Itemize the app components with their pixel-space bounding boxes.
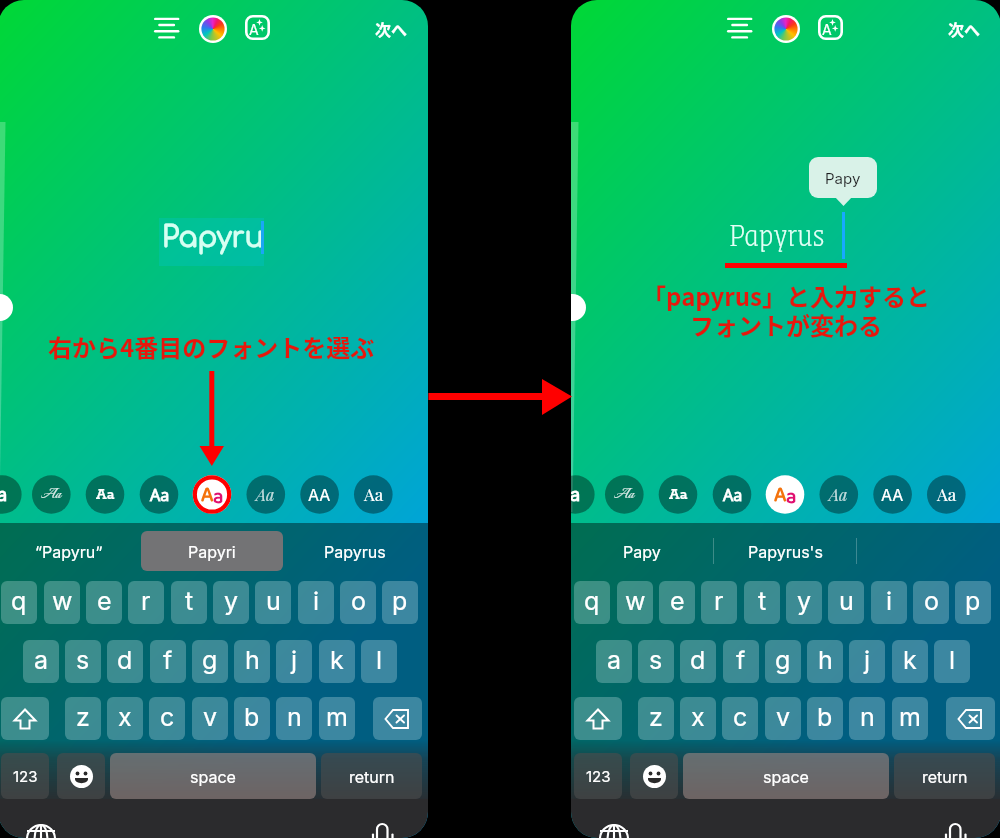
button[interactable]: m: [319, 697, 355, 740]
button[interactable]: return: [321, 753, 422, 799]
button[interactable]: k: [319, 640, 355, 683]
button[interactable]: s: [65, 640, 101, 683]
button[interactable]: m: [892, 697, 928, 740]
button[interactable]: x: [107, 697, 143, 740]
button[interactable]: z: [638, 697, 674, 740]
button[interactable]: 123: [574, 753, 622, 799]
button[interactable]: h: [807, 640, 843, 683]
button[interactable]: 123: [1, 753, 49, 799]
button[interactable]: q: [1, 581, 37, 624]
button[interactable]: g: [765, 640, 801, 683]
staticText: o: [351, 586, 366, 616]
button[interactable]: Papyrus: [284, 531, 426, 571]
button[interactable]: Text effects: [818, 15, 843, 40]
button[interactable]: k: [892, 640, 928, 683]
button[interactable]: y: [786, 581, 822, 624]
button[interactable]: a: [596, 640, 632, 683]
button[interactable]: Font style 4: [713, 475, 752, 514]
button[interactable]: a: [23, 640, 59, 683]
button[interactable]: Font style 3: [86, 475, 125, 514]
button[interactable]: u: [828, 581, 864, 624]
button[interactable]: Emoji: [630, 753, 678, 799]
button[interactable]: Shift: [1, 697, 49, 740]
button[interactable]: n: [849, 697, 885, 740]
button[interactable]: f: [723, 640, 759, 683]
button[interactable]: d: [107, 640, 143, 683]
button[interactable]: r: [701, 581, 737, 624]
button[interactable]: i: [871, 581, 907, 624]
button[interactable]: e: [659, 581, 695, 624]
button[interactable]: v: [192, 697, 228, 740]
button[interactable]: return: [894, 753, 995, 799]
button[interactable]: s: [638, 640, 674, 683]
button[interactable]: Papy: [571, 531, 713, 571]
button[interactable]: u: [255, 581, 291, 624]
button[interactable]: Font style 1: [571, 475, 595, 514]
button[interactable]: t: [744, 581, 780, 624]
button[interactable]: space: [683, 753, 889, 799]
button[interactable]: o: [913, 581, 949, 624]
button[interactable]: j: [849, 640, 885, 683]
button[interactable]: p: [382, 581, 418, 624]
button[interactable]: l: [934, 640, 970, 683]
button[interactable]: b: [234, 697, 270, 740]
button[interactable]: Font style 8: [354, 475, 393, 514]
button[interactable]: y: [213, 581, 249, 624]
button[interactable]: Font style 1: [0, 475, 22, 514]
button[interactable]: r: [128, 581, 164, 624]
button[interactable]: t: [171, 581, 207, 624]
button[interactable]: Papy: [809, 157, 877, 198]
button[interactable]: 次へ: [375, 17, 408, 40]
button[interactable]: g: [192, 640, 228, 683]
button[interactable]: w: [617, 581, 653, 624]
button[interactable]: 次へ: [948, 17, 981, 40]
button[interactable]: Backspace: [946, 697, 995, 740]
button[interactable]: Font style 7: [873, 475, 912, 514]
button[interactable]: Text alignment: [726, 16, 753, 40]
button[interactable]: w: [44, 581, 80, 624]
button[interactable]: Font style 2: [605, 475, 644, 514]
staticText: a: [0, 484, 8, 506]
button[interactable]: i: [298, 581, 334, 624]
button[interactable]: Font style 6: [246, 475, 285, 514]
button[interactable]: Emoji: [57, 753, 105, 799]
button[interactable]: l: [361, 640, 397, 683]
button[interactable]: b: [807, 697, 843, 740]
button[interactable]: e: [86, 581, 122, 624]
button[interactable]: Papyrus's: [714, 531, 856, 571]
button[interactable]: d: [680, 640, 716, 683]
button[interactable]: Font style 4: [140, 475, 179, 514]
button[interactable]: z: [65, 697, 101, 740]
button[interactable]: f: [150, 640, 186, 683]
button[interactable]: Shift: [574, 697, 622, 740]
button[interactable]: x: [680, 697, 716, 740]
button[interactable]: c: [722, 697, 758, 740]
button[interactable]: Dictation: [369, 820, 395, 838]
button[interactable]: Colour picker: [772, 15, 800, 43]
button[interactable]: n: [276, 697, 312, 740]
button[interactable]: Font style 5: [766, 475, 805, 514]
button[interactable]: Font style 6: [819, 475, 858, 514]
button[interactable]: Text effects: [245, 15, 270, 40]
button[interactable]: Dictation: [942, 820, 968, 838]
button[interactable]: h: [234, 640, 270, 683]
button[interactable]: o: [340, 581, 376, 624]
button[interactable]: Papyri: [141, 531, 283, 571]
button[interactable]: Font style 3: [659, 475, 698, 514]
button[interactable]: Colour picker: [199, 15, 227, 43]
button[interactable]: Switch keyboard: [598, 820, 630, 838]
button[interactable]: Font style 8: [927, 475, 966, 514]
button[interactable]: Switch keyboard: [25, 820, 57, 838]
button[interactable]: q: [574, 581, 610, 624]
button[interactable]: Font style 2: [32, 475, 71, 514]
button[interactable]: Font style 7: [300, 475, 339, 514]
button[interactable]: Text alignment: [153, 16, 180, 40]
button[interactable]: space: [110, 753, 316, 799]
button[interactable]: c: [149, 697, 185, 740]
button[interactable]: p: [955, 581, 991, 624]
button[interactable]: Font style 5: [193, 475, 232, 514]
button[interactable]: v: [765, 697, 801, 740]
button[interactable]: j: [276, 640, 312, 683]
button[interactable]: Backspace: [373, 697, 422, 740]
button[interactable]: “Papyru”: [0, 531, 140, 571]
